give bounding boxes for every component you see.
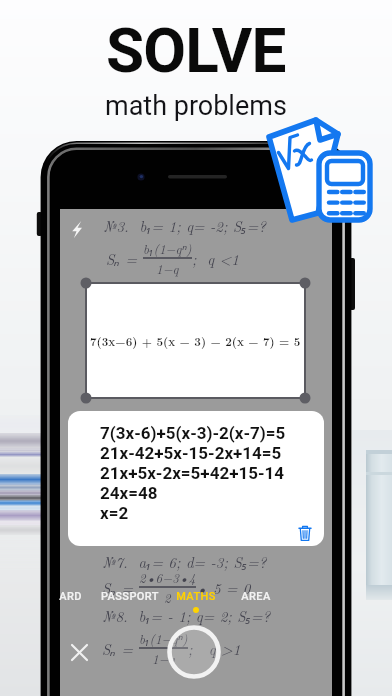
staticText: 7(3x-6)+5(x-3)-2(x-7)=5 [100,423,286,443]
staticText: SOLVE [106,14,286,87]
staticText: №3. b₁= 1; q= -2; S₅=? [103,215,266,236]
staticText: №8. b₁= - 1; q= 2; S₅=? [102,605,271,626]
staticText: 1−q [156,259,179,277]
button[interactable]: AREA [230,586,282,606]
staticText: 21x+5x-2x=5+42+15-14 [100,463,285,483]
staticText: №7. a₁= 6; d= -3; S₅=? [102,551,267,572]
button[interactable]: Delete [294,522,316,544]
staticText: 2•6−3•4 [139,568,196,586]
button[interactable]: MATHS [167,586,225,606]
staticText: 24x=48 [100,483,158,503]
staticText: AREA [241,590,271,603]
staticText: x=2 [100,503,129,523]
button[interactable]: PASSPORT [98,586,162,606]
staticText: Sₙ = [106,248,143,269]
staticText: 21x-42+5x-15-2x+14=5 [100,443,282,463]
other: Math solver [0,0,392,696]
staticText: Sₙ = [102,638,139,659]
button[interactable]: Close [63,636,95,668]
staticText: b₁(1−qⁿ) [143,239,192,257]
button[interactable]: Flash [60,213,93,246]
staticText: 1−q [152,649,175,667]
staticText: ARD [59,590,82,603]
staticText: math problems [105,90,287,122]
staticText: ; q >1 [188,638,241,659]
staticText: PASSPORT [101,590,159,603]
button[interactable]: ARD [44,586,96,606]
staticText: ; q <1 [192,248,239,269]
staticText: b₁(1−qⁿ) [139,629,188,647]
staticText: 7(3x−6) + 5(x − 3) − 2(x − 7) = 5 [90,333,301,349]
button[interactable]: Capture [167,625,221,679]
staticText: MATHS [176,590,216,603]
staticText: • 5 = 0 [196,577,251,598]
staticText: 2 [164,588,171,606]
staticText: Sₙ = [102,577,139,598]
